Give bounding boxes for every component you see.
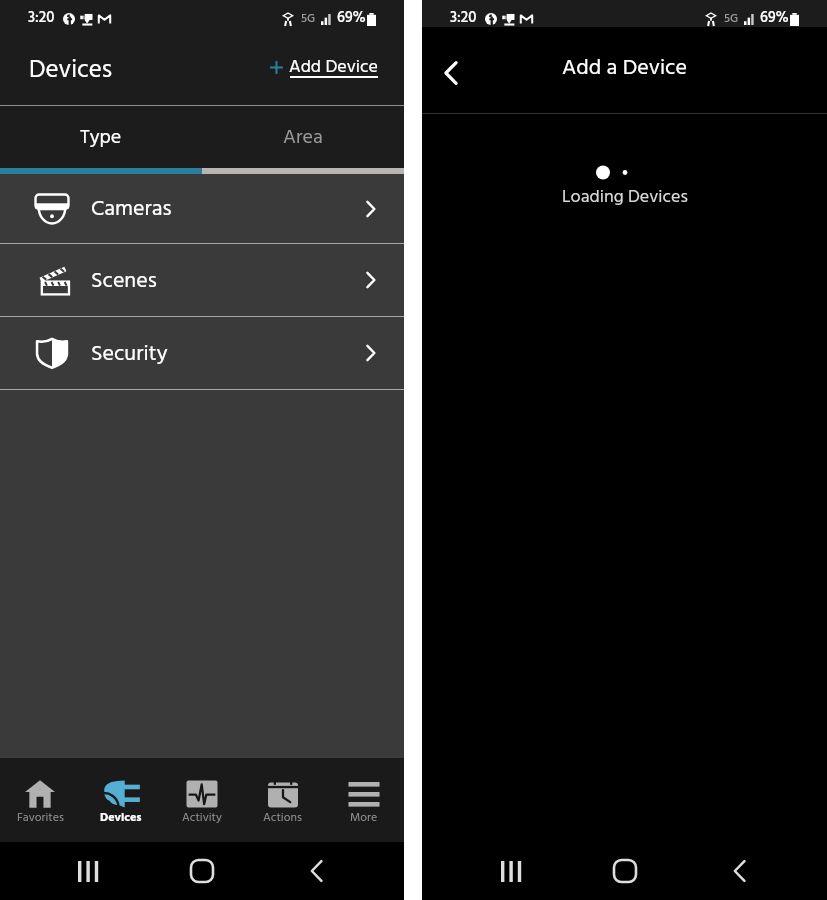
button[interactable]: Type [0,106,202,174]
button[interactable]: Scenes [0,244,404,316]
button[interactable]: Back [682,842,796,900]
staticText: Favorites [17,808,64,827]
button[interactable]: Back [259,842,373,900]
staticText: 3:20 [28,6,55,30]
staticText: Cameras [91,192,172,227]
staticText: More [350,808,378,827]
button[interactable]: Add Device [270,53,378,84]
staticText: Scenes [91,264,157,299]
button[interactable]: Actions [242,758,323,842]
staticText: Security [91,337,168,372]
button[interactable]: More [323,758,404,842]
staticText: Actions [263,808,302,827]
button[interactable]: Home [145,842,259,900]
button[interactable]: Activity [161,758,242,842]
staticText: Devices [29,51,113,91]
staticText: Devices [100,808,142,827]
button[interactable]: Back [429,51,473,95]
button[interactable]: Recents [454,842,568,900]
staticText: 69% [337,6,366,30]
staticText: Type [80,122,122,154]
staticText: 3:20 [450,6,477,30]
staticText: 5G [301,9,316,28]
button[interactable]: Home [568,842,682,900]
button[interactable]: Devices [80,758,161,842]
staticText: Area [283,122,323,154]
staticText: Activity [182,808,222,827]
staticText: 5G [724,9,739,28]
staticText: 69% [760,6,789,30]
staticText: Add a Device [562,51,687,86]
staticText: Add Device [289,53,378,82]
button[interactable]: Favorites [0,758,80,842]
button[interactable]: Security [0,317,404,389]
button[interactable]: Recents [31,842,145,900]
staticText: Loading Devices [562,183,688,212]
button[interactable]: Cameras [0,174,404,243]
button[interactable]: Area [202,106,404,174]
